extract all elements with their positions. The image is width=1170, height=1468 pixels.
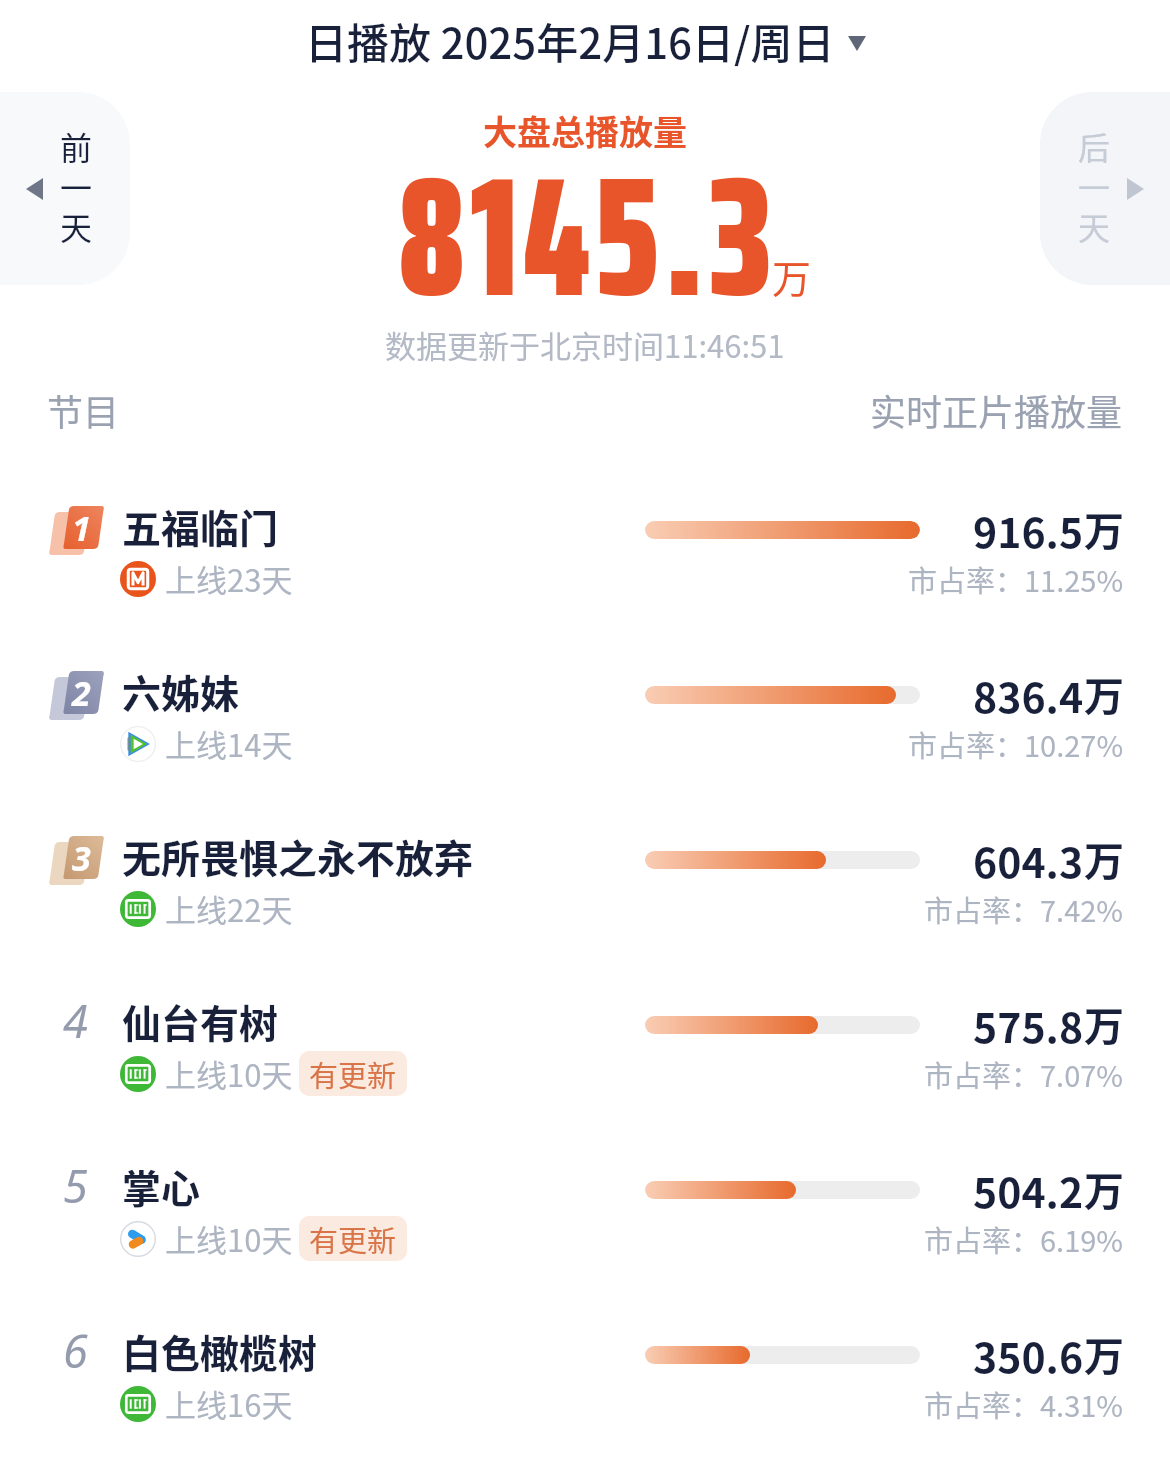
staticText: 3 (72, 835, 91, 881)
staticText: 无所畏惧之永不放弃 (122, 828, 474, 884)
staticText: 916.5 (973, 500, 1084, 559)
staticText: 万 (1084, 1160, 1124, 1218)
staticText: 万 (1084, 1325, 1124, 1383)
button[interactable]: 前一天 (0, 92, 130, 285)
staticText: 有更新 (309, 1218, 397, 1260)
staticText: 6 (63, 1320, 88, 1369)
staticText: 白色橄榄树 (122, 1323, 318, 1379)
staticText: 5 (63, 1155, 88, 1204)
staticText: 836.4 (973, 665, 1084, 724)
staticText: 上线23天 (165, 556, 293, 601)
staticText: 实时正片播放量 (870, 384, 1123, 436)
button[interactable]: 2 (0, 659, 1170, 824)
staticText: 万 (1084, 995, 1124, 1053)
staticText: 市占率：11.25% (908, 558, 1124, 600)
staticText: 市占率：6.19% (924, 1218, 1124, 1260)
staticText: 天 (60, 203, 93, 243)
staticText: 六姊妹 (122, 663, 240, 719)
staticText: 节目 (47, 384, 120, 436)
staticText: 市占率：7.07% (924, 1053, 1124, 1095)
staticText: 万 (1084, 830, 1124, 888)
staticText: 一 (60, 163, 93, 203)
staticText: 日播放 2025年2月16日/周日 (305, 10, 835, 71)
staticText: 仙台有树 (122, 993, 279, 1049)
button[interactable]: 6 (0, 1319, 1170, 1468)
staticText: 市占率：10.27% (908, 723, 1124, 765)
staticText: 350.6 (973, 1325, 1084, 1384)
button[interactable]: 日播放 2025年2月16日/周日 (297, 4, 874, 77)
staticText: 一 (1078, 163, 1111, 203)
staticText: 大盘总播放量 (483, 106, 687, 155)
staticText: 上线10天 (165, 1051, 293, 1096)
staticText: 上线14天 (165, 721, 293, 766)
staticText: 8145.3 (398, 105, 777, 368)
staticText: 有更新 (309, 1053, 397, 1095)
staticText: 1 (72, 505, 91, 551)
button[interactable]: 1 (0, 494, 1170, 659)
staticText: 万 (772, 248, 812, 304)
staticText: 前 (60, 123, 93, 163)
staticText: 掌心 (122, 1158, 201, 1214)
staticText: 4 (63, 990, 88, 1039)
staticText: 万 (1084, 665, 1124, 723)
staticText: 市占率：7.42% (924, 888, 1124, 930)
staticText: 五福临门 (122, 498, 279, 554)
staticText: 天 (1078, 203, 1111, 243)
staticText: 604.3 (973, 830, 1084, 889)
staticText: 上线16天 (165, 1381, 293, 1426)
staticText: 上线22天 (165, 886, 293, 931)
staticText: 2 (72, 670, 91, 716)
staticText: 市占率：4.31% (924, 1383, 1124, 1425)
staticText: 上线10天 (165, 1216, 293, 1261)
button[interactable]: 3 (0, 824, 1170, 989)
staticText: 万 (1084, 500, 1124, 558)
staticText: 575.8 (973, 995, 1084, 1054)
staticText: 后 (1078, 123, 1111, 163)
staticText: 504.2 (973, 1160, 1084, 1219)
staticText: 数据更新于北京时间11:46:51 (385, 322, 785, 367)
button[interactable]: 后一天 (1040, 92, 1170, 285)
button[interactable]: 5 (0, 1154, 1170, 1319)
button[interactable]: 4 (0, 989, 1170, 1154)
